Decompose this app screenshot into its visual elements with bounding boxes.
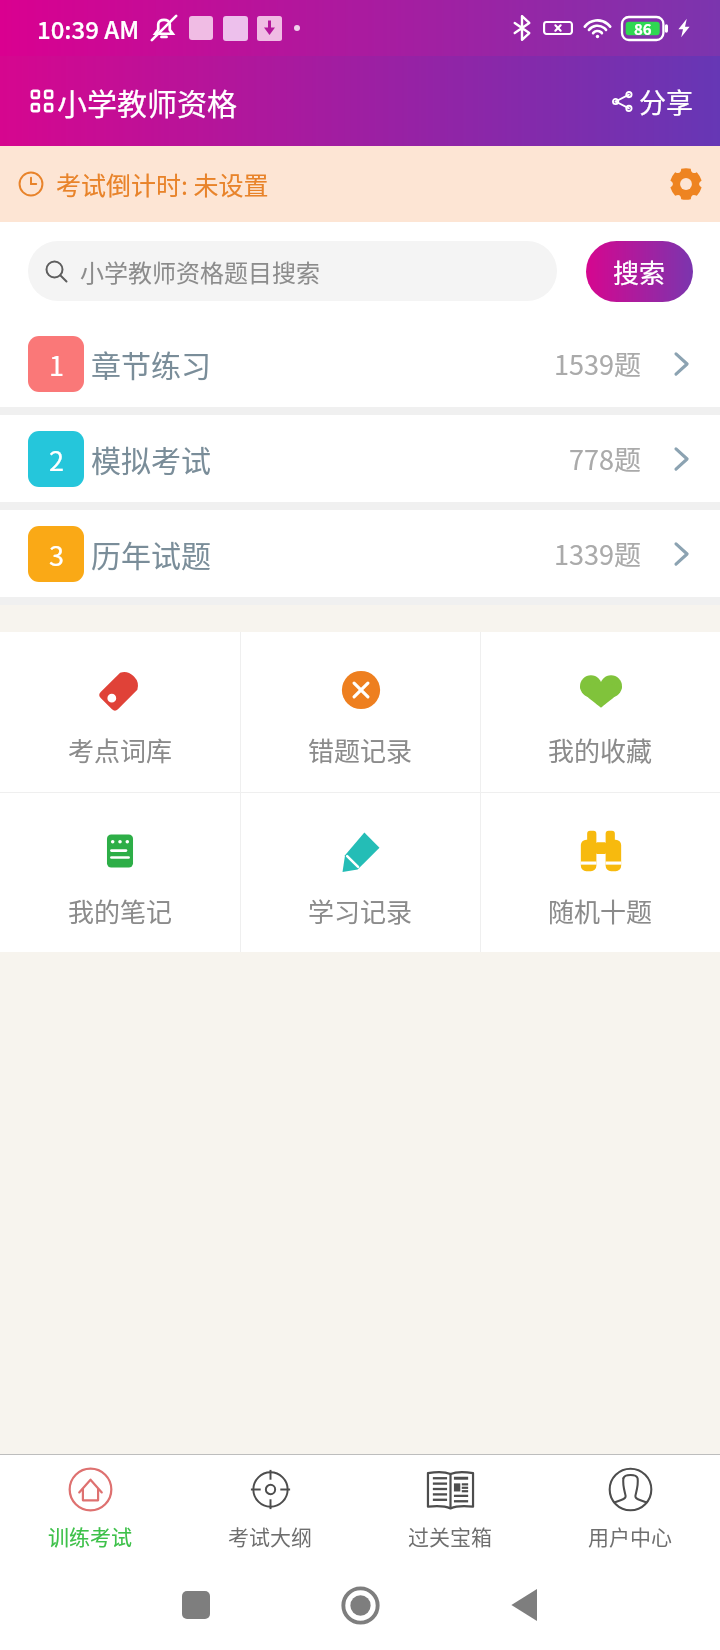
button[interactable]: 考试大纲 xyxy=(180,1455,360,1560)
button[interactable]: 1 xyxy=(0,320,720,407)
staticText: 学习记录 xyxy=(308,892,413,930)
button[interactable]: Back xyxy=(505,1585,545,1625)
staticText: 10:39 AM xyxy=(37,11,140,46)
staticText: 1 xyxy=(49,345,64,384)
staticText: 我的收藏 xyxy=(548,731,653,769)
button[interactable]: 我的笔记 xyxy=(0,793,240,952)
button[interactable]: 学习记录 xyxy=(241,793,480,952)
staticText: 1539题 xyxy=(554,344,641,383)
button[interactable]: 2 xyxy=(0,415,720,502)
staticText: 86 xyxy=(634,18,652,40)
button[interactable]: 用户中心 xyxy=(540,1455,720,1560)
button[interactable]: 搜索 xyxy=(586,241,693,302)
staticText: 3 xyxy=(49,535,64,574)
staticText: 章节练习 xyxy=(91,342,211,385)
button[interactable]: 错题记录 xyxy=(241,632,480,792)
button[interactable]: 我的收藏 xyxy=(481,632,720,792)
staticText: 错题记录 xyxy=(308,731,413,769)
staticText: 1339题 xyxy=(554,534,641,573)
staticText: 小学教师资格 xyxy=(57,80,237,123)
staticText: 考点词库 xyxy=(68,731,173,769)
button[interactable]: 训练考试 xyxy=(0,1455,180,1560)
staticText: 我的笔记 xyxy=(68,892,173,930)
button[interactable]: 小学教师资格题目搜索 xyxy=(28,241,557,301)
staticText: 778题 xyxy=(569,439,641,478)
button[interactable]: 分享 xyxy=(609,74,695,129)
staticText: 过关宝箱 xyxy=(408,1521,492,1551)
button[interactable]: 考点词库 xyxy=(0,632,240,792)
staticText: 考试倒计时: 未设置 xyxy=(56,166,269,202)
button[interactable]: 随机十题 xyxy=(481,793,720,952)
staticText: 随机十题 xyxy=(548,892,653,930)
button[interactable]: Recents xyxy=(182,1591,210,1619)
staticText: 模拟考试 xyxy=(91,437,211,480)
staticText: 分享 xyxy=(639,82,693,121)
button[interactable]: Settings xyxy=(666,164,706,204)
staticText: 2 xyxy=(49,440,64,479)
staticText: 小学教师资格题目搜索 xyxy=(80,254,320,289)
button[interactable]: Home xyxy=(341,1586,380,1625)
button[interactable]: 3 xyxy=(0,510,720,597)
staticText: 考试大纲 xyxy=(228,1521,312,1551)
button[interactable]: 过关宝箱 xyxy=(360,1455,540,1560)
staticText: 历年试题 xyxy=(91,532,211,575)
staticText: 训练考试 xyxy=(48,1521,132,1551)
staticText: 搜索 xyxy=(613,253,666,291)
staticText: 用户中心 xyxy=(588,1521,672,1551)
